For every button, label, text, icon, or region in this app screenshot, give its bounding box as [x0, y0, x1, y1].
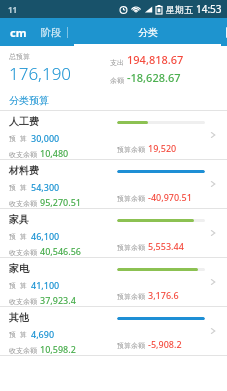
staticText: 预算余额 — [117, 194, 145, 203]
staticText: 41,100 — [31, 279, 60, 291]
staticText: 预 算 — [9, 183, 27, 193]
staticText: 收支余额 — [9, 248, 37, 257]
staticText: 14:53 — [196, 2, 222, 16]
staticText: 37,923.4 — [40, 294, 76, 306]
staticText: 54,300 — [31, 181, 60, 193]
staticText: 支出 — [110, 58, 124, 67]
staticText: 预 算 — [9, 134, 27, 144]
staticText: 预 算 — [9, 281, 27, 291]
staticText: 11 — [8, 4, 18, 15]
staticText: 4,690 — [31, 328, 55, 340]
button[interactable]: 阶段 — [35, 18, 67, 46]
staticText: 收支余额 — [9, 199, 37, 208]
staticText: 人工费 — [9, 115, 39, 128]
other: Signal — [144, 5, 153, 14]
staticText: 其他 — [9, 311, 29, 324]
staticText: 预 算 — [9, 330, 27, 340]
staticText: 95,270.51 — [40, 196, 81, 208]
staticText: 40,546.56 — [40, 245, 81, 257]
other: Alarm — [119, 5, 128, 14]
staticText: 余额 — [110, 76, 124, 85]
other: Battery — [156, 5, 162, 14]
staticText: 阶段 — [41, 26, 61, 39]
staticText: 46,100 — [31, 230, 60, 242]
staticText: 家具 — [9, 213, 29, 226]
staticText: 10,598.2 — [40, 343, 76, 355]
staticText: 预算余额 — [117, 243, 145, 252]
staticText: 预算余额 — [117, 341, 145, 350]
button[interactable]: 家具 — [0, 209, 227, 258]
staticText: 收支余额 — [9, 297, 37, 306]
staticText: 星期五 — [166, 4, 193, 15]
staticText: -18,628.67 — [127, 70, 181, 85]
staticText: 10,480 — [40, 147, 69, 159]
staticText: 预算余额 — [117, 292, 145, 301]
staticText: 分类 — [138, 26, 158, 39]
staticText: 5,553.44 — [148, 240, 184, 252]
staticText: -40,970.51 — [148, 191, 192, 203]
staticText: 预 算 — [9, 232, 27, 242]
staticText: 收支余额 — [9, 346, 37, 355]
staticText: 30,000 — [31, 132, 60, 144]
staticText: 总预算 — [9, 52, 30, 61]
button[interactable]: 分类 — [68, 18, 227, 46]
staticText: -5,908.2 — [148, 338, 182, 350]
button[interactable]: 人工费 — [0, 111, 227, 160]
other: Wi-Fi — [131, 4, 141, 14]
staticText: 176,190 — [9, 62, 72, 85]
staticText: 材料费 — [9, 164, 39, 177]
button[interactable]: Home logo — [5, 22, 32, 42]
staticText: 分类预算 — [9, 94, 49, 107]
staticText: 194,818.67 — [127, 52, 184, 67]
button[interactable]: 材料费 — [0, 160, 227, 209]
staticText: 3,176.6 — [148, 289, 179, 301]
staticText: cm — [10, 25, 27, 40]
staticText: 19,520 — [148, 142, 177, 154]
staticText: 收支余额 — [9, 150, 37, 159]
button[interactable]: 其他 — [0, 307, 227, 356]
staticText: 预算余额 — [117, 145, 145, 154]
button[interactable]: 家电 — [0, 258, 227, 307]
staticText: 家电 — [9, 262, 29, 275]
